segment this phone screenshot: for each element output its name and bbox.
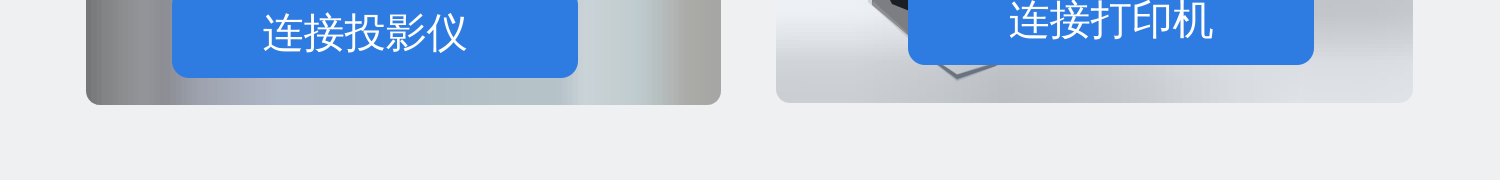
button[interactable]: 连接投影仪	[172, 0, 578, 78]
staticText: 连接投影仪	[262, 8, 467, 58]
button[interactable]: 连接打印机	[908, 0, 1314, 65]
staticText: 连接打印机	[1008, 0, 1213, 45]
